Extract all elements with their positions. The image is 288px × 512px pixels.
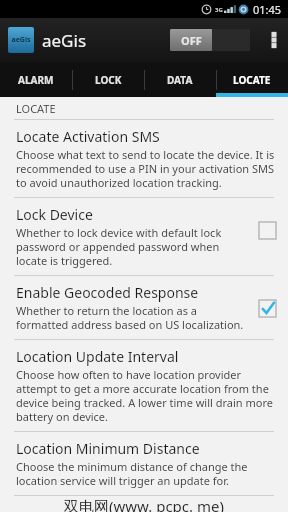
button[interactable]: LOCK	[72, 62, 144, 97]
staticText: aeGis	[11, 35, 31, 45]
button[interactable]: Unchecked	[256, 219, 278, 241]
staticText: 3G	[215, 6, 223, 14]
staticText: Location Minimum Distance	[16, 439, 200, 458]
button[interactable]: ALARM	[0, 62, 72, 97]
staticText: OFF	[181, 33, 202, 48]
staticText: ALARM	[18, 73, 54, 87]
button[interactable]: Location Minimum Distance	[0, 432, 288, 495]
staticText: Choose how often to have location provid…	[16, 367, 278, 424]
staticText: 双电网(www. pcpc. me)	[64, 496, 224, 512]
staticText: LOCK	[95, 73, 122, 87]
button[interactable]: LOCATE	[216, 62, 288, 97]
staticText: Choose what text to send to locate the d…	[16, 147, 278, 190]
button[interactable]: Checked	[256, 297, 278, 319]
button[interactable]: Location Update Interval	[0, 340, 288, 431]
staticText: Whether to return the location as a form…	[16, 303, 248, 332]
staticText: Location Update Interval	[16, 347, 179, 366]
button[interactable]: Enable Geocoded Response	[0, 276, 288, 339]
staticText: DATA	[167, 73, 193, 87]
staticText: Whether to lock device with default lock…	[16, 225, 248, 268]
staticText: Choose the minimum distance of change th…	[16, 459, 278, 488]
button[interactable]: Lock Device	[0, 198, 288, 275]
staticText: Lock Device	[16, 205, 93, 224]
staticText: LOCATE	[233, 73, 271, 87]
staticText: aeGis	[42, 29, 87, 52]
staticText: LOCATE	[16, 101, 56, 116]
staticText: Enable Geocoded Response	[16, 283, 199, 302]
button[interactable]: Locate Activation SMS	[0, 120, 288, 197]
staticText: 01:45	[253, 2, 282, 17]
button[interactable]: DATA	[144, 62, 216, 97]
button[interactable]: Toggle aeGis off	[170, 29, 250, 51]
staticText: Locate Activation SMS	[16, 127, 160, 146]
button[interactable]: More options	[260, 18, 288, 62]
